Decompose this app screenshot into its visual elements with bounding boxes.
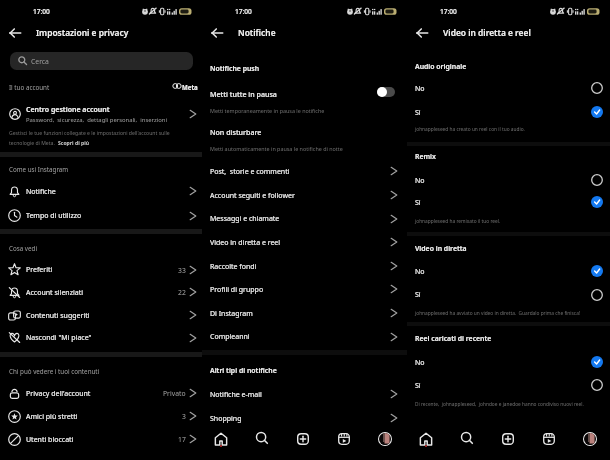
staticText: Sì [415, 381, 421, 391]
button[interactable]: Back [4, 22, 30, 44]
button[interactable]: Reels [535, 425, 563, 453]
staticText: Cosa vedi [9, 244, 38, 253]
staticText: Di Instagram [210, 309, 253, 319]
button[interactable] [0, 327, 202, 349]
staticText: Il tuo account [9, 83, 50, 92]
staticText: 17 [178, 435, 186, 444]
staticText: Impostazioni e privacy [36, 27, 129, 38]
button[interactable] [0, 281, 202, 303]
button[interactable] [407, 351, 610, 373]
button[interactable]: Back [206, 22, 232, 44]
staticText: Altri tipi di notifiche [210, 366, 277, 375]
button[interactable] [202, 383, 407, 405]
staticText: Metti temporaneamente in pausa le notifi… [210, 107, 325, 114]
button[interactable] [202, 231, 407, 253]
staticText: tecnologie di Meta. [9, 140, 55, 147]
staticText: johnappleseed ha remixato il tuo reel. [415, 218, 501, 225]
button[interactable] [407, 191, 610, 213]
button[interactable]: Search [248, 425, 276, 453]
staticText: Compleanni [210, 332, 250, 342]
button[interactable]: Create [289, 425, 317, 453]
button[interactable] [0, 428, 202, 450]
button[interactable] [0, 205, 202, 227]
staticText: 17:00 [33, 7, 50, 16]
staticText: Reel caricati di recente [415, 334, 492, 343]
staticText: Post, storie e commenti [210, 167, 290, 177]
staticText: Metti tutte in pausa [210, 89, 277, 99]
staticText: 22 [178, 288, 186, 297]
staticText: Come usi Instagram [9, 165, 69, 174]
button[interactable] [407, 374, 610, 396]
staticText: Contenuti suggeriti [26, 311, 90, 321]
button[interactable]: Back [411, 22, 437, 44]
staticText: Video in diretta [415, 244, 467, 253]
staticText: Password, sicurezza, dettagli personali,… [26, 116, 167, 124]
staticText: Amici più stretti [26, 412, 78, 422]
staticText: Notifiche [26, 187, 56, 197]
staticText: Raccolte fondi [210, 262, 257, 272]
staticText: Messaggi e chiamate [210, 214, 280, 224]
button[interactable]: Profile [371, 425, 399, 453]
staticText: Account silenziati [26, 288, 84, 298]
staticText: Audio originale [415, 62, 467, 71]
staticText: Non disturbare [210, 127, 262, 137]
button[interactable] [202, 208, 407, 230]
staticText: johnappleseed ha creato un reel con il t… [415, 126, 525, 133]
button[interactable]: Profile [576, 425, 604, 453]
staticText: johnappleseed ha avviato un video in dir… [415, 310, 581, 317]
staticText: Di recente, johnappleseed, johndoe e jan… [415, 401, 584, 408]
staticText: 33 [178, 266, 186, 275]
staticText: Utenti bloccati [26, 435, 74, 445]
button[interactable] [202, 326, 407, 348]
button[interactable] [0, 304, 202, 326]
button[interactable] [0, 100, 202, 128]
staticText: Preferiti [26, 265, 53, 275]
button[interactable] [202, 278, 407, 300]
button[interactable]: Search [453, 425, 481, 453]
staticText: Video in diretta e reel [210, 238, 281, 248]
button[interactable] [407, 77, 610, 99]
staticText: Cerca [31, 57, 49, 66]
button[interactable]: Reels [330, 425, 358, 453]
staticText: Metti automaticamente in pausa le notifi… [210, 145, 343, 152]
button[interactable]: Home [412, 425, 440, 453]
staticText: No [415, 358, 425, 368]
staticText: No [415, 176, 425, 186]
button[interactable] [407, 101, 610, 123]
staticText: Profili di gruppo [210, 285, 264, 295]
staticText: 3 [182, 412, 186, 421]
button[interactable] [202, 302, 407, 324]
staticText: Scopri di più [58, 140, 90, 147]
staticText: Privacy dell'account [26, 389, 91, 399]
staticText: Gestisci le tue funzioni collegate e le … [9, 130, 170, 137]
staticText: No [415, 84, 425, 94]
staticText: Account seguiti e follower [210, 191, 295, 201]
button[interactable] [0, 382, 202, 404]
button[interactable] [202, 184, 407, 206]
staticText: Notifiche e-mail [210, 390, 262, 400]
button[interactable] [0, 259, 202, 281]
staticText: Privato [163, 389, 186, 398]
button[interactable] [0, 405, 202, 427]
staticText: Tempo di utilizzo [26, 211, 82, 221]
staticText: Chi può vedere i tuoi contenuti [9, 367, 100, 376]
staticText: Remix [415, 152, 436, 161]
button[interactable] [407, 284, 610, 306]
button[interactable] [407, 260, 610, 282]
button[interactable] [202, 255, 407, 277]
button[interactable] [202, 160, 407, 182]
staticText: 17:00 [440, 7, 457, 16]
button[interactable] [0, 180, 202, 202]
button[interactable] [10, 52, 193, 70]
button[interactable]: Metti tutte in pausa [377, 87, 395, 97]
button[interactable] [202, 407, 407, 429]
staticText: Sì [415, 290, 421, 300]
staticText: Sì [415, 198, 421, 208]
staticText: Nascondi "Mi piace" [26, 333, 92, 343]
staticText: Notifiche [238, 27, 276, 38]
button[interactable] [407, 169, 610, 191]
button[interactable]: Create [494, 425, 522, 453]
staticText: Meta [182, 83, 198, 91]
button[interactable]: Home [207, 425, 235, 453]
staticText: Notifiche push [210, 64, 260, 73]
